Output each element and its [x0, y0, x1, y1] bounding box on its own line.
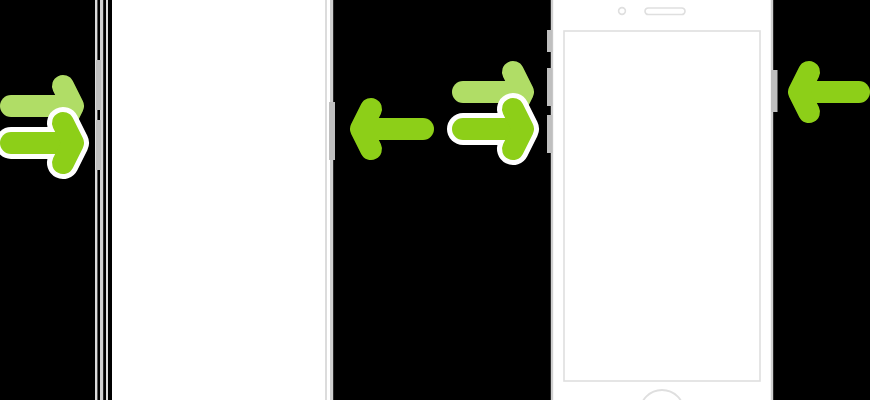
- button[interactable]: Two phones side by side with green trans…: [0, 0, 870, 400]
